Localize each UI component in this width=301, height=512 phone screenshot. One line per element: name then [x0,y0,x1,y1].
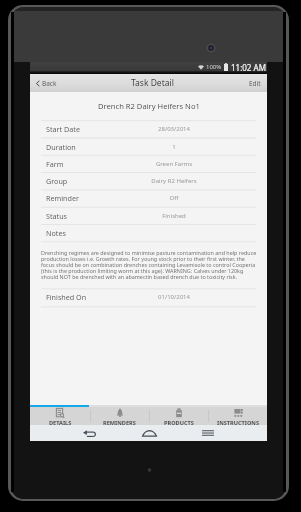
button[interactable]: REMINDERS [90,407,149,425]
button[interactable]: Finished On [30,288,267,306]
staticText: Back [42,79,57,88]
button[interactable]: Duration [30,138,267,155]
button[interactable]: Recent apps [190,425,226,441]
staticText: Farm [46,159,64,169]
staticText: should NOT be drenched with an abamectin… [41,273,238,280]
staticText: Edit [249,79,261,88]
staticText: 01/10/2014 [119,293,229,301]
button[interactable]: PRODUCTS [149,407,208,425]
staticText: Notes [46,228,66,238]
staticText: Drenching regimes are designed to minimi… [41,249,257,256]
staticText: Green Farms [119,160,229,168]
staticText: 28/03/2014 [119,125,229,133]
staticText: (this is the production limiting worm at… [41,267,244,274]
staticText: DETAILS [49,419,72,425]
button[interactable]: Home [131,425,167,441]
staticText: PRODUCTS [164,419,194,425]
button[interactable]: Edit [247,76,263,91]
staticText: 11:02 AM [231,62,266,72]
button[interactable]: Group [30,172,267,189]
staticText: Duration [46,142,76,152]
staticText: Finished On [46,292,87,302]
staticText: Reminder [46,193,79,203]
staticText: Status [46,211,68,221]
button[interactable]: Farm [30,155,267,172]
button[interactable]: Notes [30,224,267,241]
staticText: INSTRUCTIONS [217,419,259,425]
staticText: production losses i.e. Growth rates. For… [41,255,245,262]
staticText: Finished [119,212,229,220]
staticText: Group [46,176,68,186]
staticText: Dairy R2 Heifers [119,177,229,185]
staticText: Off [119,194,229,202]
button[interactable]: Status [30,207,267,224]
staticText: REMINDERS [103,419,136,425]
button[interactable]: Back [34,76,59,91]
staticText: Drench R2 Dairy Heifers No1 [98,101,200,111]
staticText: Start Date [46,124,80,134]
staticText: Task Detail [131,77,174,89]
button[interactable]: Back [71,425,107,441]
button[interactable]: DETAILS [30,407,90,425]
staticText: focus should be on combination drenches … [41,261,256,268]
button[interactable]: INSTRUCTIONS [208,407,267,425]
button[interactable]: Start Date [30,120,267,137]
staticText: 1 [119,143,229,151]
staticText: 100% [206,63,222,71]
button[interactable]: Reminder [30,189,267,206]
